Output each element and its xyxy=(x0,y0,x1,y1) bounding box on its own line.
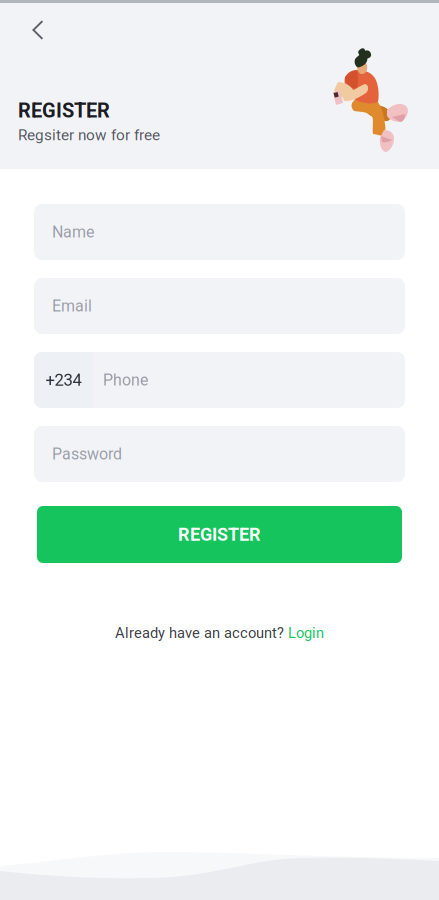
button[interactable]: Password xyxy=(34,426,405,482)
staticText: Name xyxy=(52,223,94,241)
button[interactable]: Name xyxy=(34,204,405,260)
staticText: Phone xyxy=(103,371,148,389)
staticText: Regsiter now for free xyxy=(18,126,160,144)
staticText: +234 xyxy=(45,370,81,390)
staticText: Password xyxy=(52,445,122,463)
button[interactable]: Email xyxy=(34,278,405,334)
button[interactable]: Back xyxy=(18,13,58,47)
staticText: Already have an account? xyxy=(115,624,284,642)
staticText: REGISTER xyxy=(178,524,261,545)
button[interactable]: REGISTER xyxy=(37,506,402,563)
button[interactable]: +234 xyxy=(34,352,405,408)
staticText: Email xyxy=(52,297,92,315)
button[interactable]: Already have an account? xyxy=(34,618,405,648)
staticText: Login xyxy=(288,624,324,642)
staticText: REGISTER xyxy=(18,99,110,122)
